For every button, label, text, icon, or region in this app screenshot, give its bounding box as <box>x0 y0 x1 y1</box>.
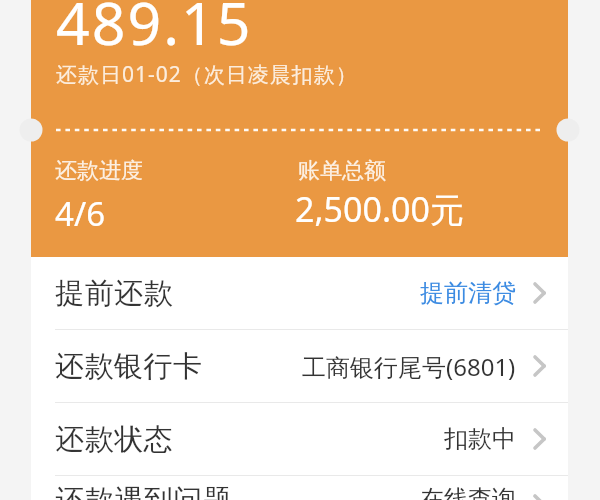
staticText: 扣款中 <box>444 424 516 454</box>
staticText: 还款日01-02（次日凌晨扣款） <box>56 60 358 89</box>
staticText: 工商银行尾号(6801) <box>302 350 516 383</box>
staticText: 还款遇到问题 <box>55 482 232 500</box>
staticText: 还款银行卡 <box>55 348 203 385</box>
staticText: 在线查询 <box>420 484 516 500</box>
button[interactable]: 还款遇到问题 <box>55 482 548 500</box>
staticText: 4/6 <box>55 191 106 236</box>
staticText: 提前还款 <box>55 275 173 312</box>
staticText: 提前清贷 <box>420 278 516 308</box>
button[interactable]: 还款状态 <box>31 403 568 476</box>
staticText: 还款状态 <box>55 421 173 458</box>
button[interactable]: 还款银行卡 <box>31 330 568 403</box>
staticText: 账单总额 <box>298 157 386 185</box>
staticText: 489.15 <box>56 0 253 62</box>
button[interactable]: 提前还款 <box>31 257 568 330</box>
staticText: 2,500.00元 <box>295 186 464 232</box>
staticText: 还款进度 <box>55 157 143 185</box>
